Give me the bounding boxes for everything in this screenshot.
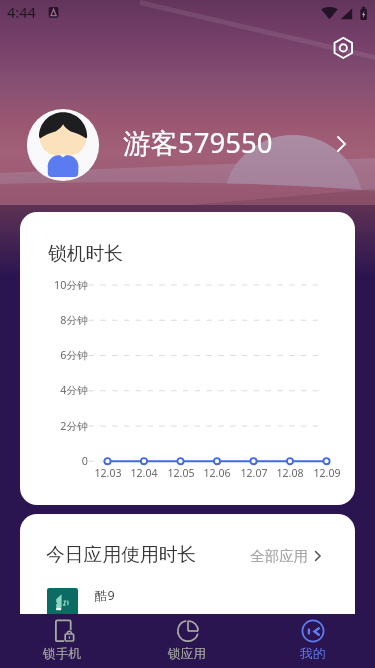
staticText: 12.04: [126, 466, 162, 480]
button[interactable]: 游客579550: [0, 106, 375, 184]
staticText: 6分钟: [22, 347, 88, 362]
button[interactable]: 我的: [250, 614, 375, 668]
staticText: 12.03: [90, 466, 126, 480]
staticText: 锁应用: [168, 646, 207, 662]
button[interactable]: 锁应用: [125, 614, 250, 668]
button[interactable]: 全部应用: [250, 545, 320, 567]
staticText: 4分钟: [22, 382, 88, 397]
staticText: 10分钟: [22, 277, 88, 292]
staticText: 我的: [300, 646, 326, 662]
staticText: 游客579550: [123, 124, 273, 162]
staticText: 12.05: [163, 466, 199, 480]
button[interactable]: Settings: [327, 31, 359, 63]
button[interactable]: 锁机时长: [20, 212, 355, 505]
staticText: 2分钟: [22, 418, 88, 433]
staticText: 今日应用使用时长: [46, 543, 197, 567]
staticText: 锁机时长: [48, 242, 124, 266]
staticText: 8分钟: [22, 312, 88, 327]
button[interactable]: 酷9: [20, 582, 355, 626]
staticText: 锁手机: [43, 646, 82, 662]
staticText: 12.07: [236, 466, 272, 480]
staticText: 12.06: [199, 466, 235, 480]
staticText: 酷9: [95, 587, 115, 604]
staticText: 0: [22, 453, 88, 468]
staticText: 12.08: [272, 466, 308, 480]
staticText: 全部应用: [250, 547, 308, 565]
staticText: 12.09: [309, 466, 345, 480]
staticText: 4:44: [7, 2, 36, 22]
button[interactable]: 锁手机: [0, 614, 125, 668]
